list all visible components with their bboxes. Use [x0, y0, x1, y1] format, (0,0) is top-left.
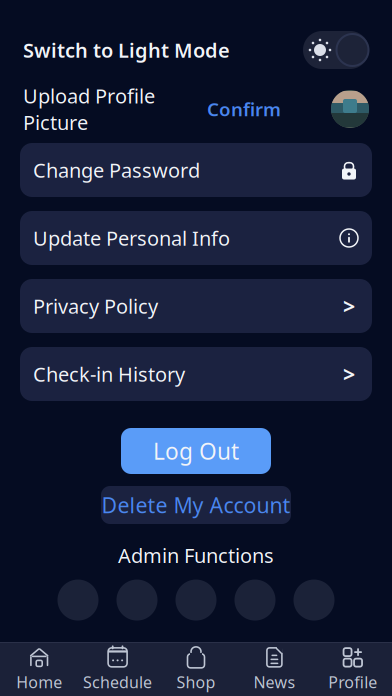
staticText: News — [253, 671, 295, 693]
staticText: > — [343, 360, 355, 388]
staticText: Switch to Light Mode — [23, 37, 230, 63]
staticText: Upload Profile Picture — [23, 82, 155, 135]
button[interactable]: Update Personal Info — [20, 211, 372, 265]
staticText: Confirm — [207, 97, 281, 121]
button[interactable]: Switch to Light Mode — [0, 25, 392, 75]
button[interactable]: News — [235, 643, 314, 696]
button[interactable]: Privacy Policy — [20, 279, 372, 333]
button[interactable]: Upload Profile Picture — [23, 82, 155, 135]
staticText: Log Out — [153, 436, 239, 466]
staticText: Home — [16, 671, 62, 693]
button[interactable]: Switch to Light Mode — [303, 31, 369, 69]
button[interactable]: Confirm — [207, 97, 281, 121]
button[interactable]: Delete My Account — [101, 486, 291, 524]
staticText: Privacy Policy — [33, 293, 158, 319]
button[interactable]: Log Out — [121, 428, 271, 474]
button[interactable]: Check-in History — [20, 347, 372, 401]
staticText: Update Personal Info — [33, 225, 230, 251]
staticText: Profile — [328, 671, 377, 693]
staticText: Delete My Account — [101, 491, 290, 519]
staticText: > — [343, 292, 355, 320]
button[interactable]: Profile photo — [331, 90, 369, 128]
staticText: Check-in History — [33, 361, 185, 387]
staticText: Change Password — [33, 157, 200, 183]
button[interactable]: Home — [0, 643, 78, 696]
button[interactable]: Change Password — [20, 143, 372, 197]
button[interactable]: Schedule — [78, 643, 157, 696]
button[interactable]: Profile — [314, 643, 392, 696]
button[interactable]: Shop — [157, 643, 235, 696]
staticText: Shop — [176, 671, 215, 693]
staticText: Admin Functions — [118, 542, 274, 569]
staticText: Schedule — [83, 671, 152, 693]
